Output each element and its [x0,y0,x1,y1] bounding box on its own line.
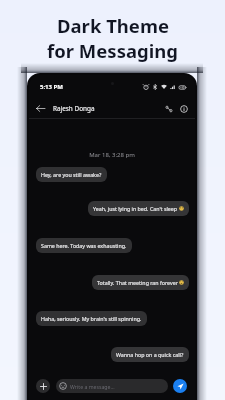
staticText: Yeah, just lying in bed. Can't sleep [93,205,178,212]
button[interactable]: Add attachment [36,379,50,393]
staticText: Rajesh Donga [53,104,95,113]
button[interactable]: Same here. Today was exhausting. [36,238,132,253]
staticText: 5:13 PM [40,83,63,91]
staticText: Hey, are you still awake? [41,171,102,178]
button[interactable]: Back [34,102,47,115]
button[interactable]: Wanna hop on a quick call? [111,347,189,362]
button[interactable]: Write a message... [56,379,168,393]
staticText: Mar 18, 3:28 pm [29,151,195,159]
button[interactable]: Yeah, just lying in bed. Can't sleep [88,201,189,216]
staticText: Dark Theme [57,13,169,38]
button[interactable]: Send [173,379,187,393]
staticText: Same here. Today was exhausting. [41,242,127,249]
button[interactable]: Totally. That meeting ran forever [92,275,189,290]
staticText: Totally. That meeting ran forever [97,279,178,286]
button[interactable]: Haha, seriously. My brain's still spinni… [36,311,147,326]
button[interactable]: Hey, are you still awake? [36,167,107,182]
button[interactable]: Call [162,102,175,115]
staticText: for Messaging [47,38,178,63]
staticText: Write a message... [70,383,115,390]
staticText: Wanna hop on a quick call? [116,351,184,358]
button[interactable]: Info [177,102,190,115]
staticText: Haha, seriously. My brain's still spinni… [41,315,142,322]
